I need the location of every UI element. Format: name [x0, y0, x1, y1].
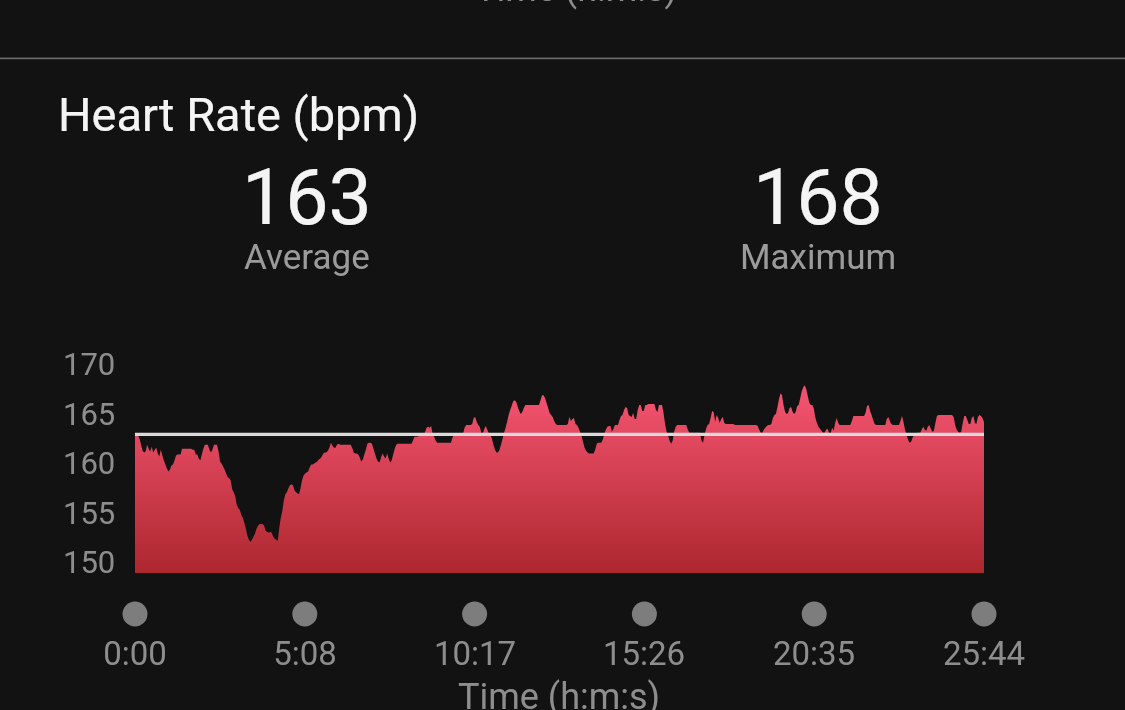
staticText: 160 — [63, 445, 116, 481]
staticText: 150 — [63, 544, 116, 580]
other: Heart rate chart — [0, 59, 1125, 710]
staticText: 168 — [753, 153, 883, 243]
staticText: Time (h:m:s) — [475, 0, 678, 10]
staticText: Time (h:m:s) — [458, 676, 661, 710]
staticText: 5:08 — [235, 634, 375, 673]
staticText: 163 — [242, 153, 372, 243]
button[interactable]: Heart Rate (bpm) — [0, 59, 1125, 710]
staticText: 170 — [63, 346, 116, 382]
staticText: 10:17 — [405, 634, 545, 673]
staticText: 155 — [63, 495, 116, 531]
staticText: Average — [244, 237, 370, 278]
staticText: 165 — [63, 396, 116, 432]
staticText: 15:26 — [574, 634, 714, 673]
staticText: 0:00 — [65, 634, 205, 673]
staticText: 25:44 — [914, 634, 1054, 673]
staticText: Maximum — [740, 237, 897, 278]
button[interactable]: 163 — [51, 153, 562, 284]
staticText: 20:35 — [744, 634, 884, 673]
button[interactable]: 168 — [562, 153, 1074, 284]
staticText: Heart Rate (bpm) — [58, 87, 420, 142]
